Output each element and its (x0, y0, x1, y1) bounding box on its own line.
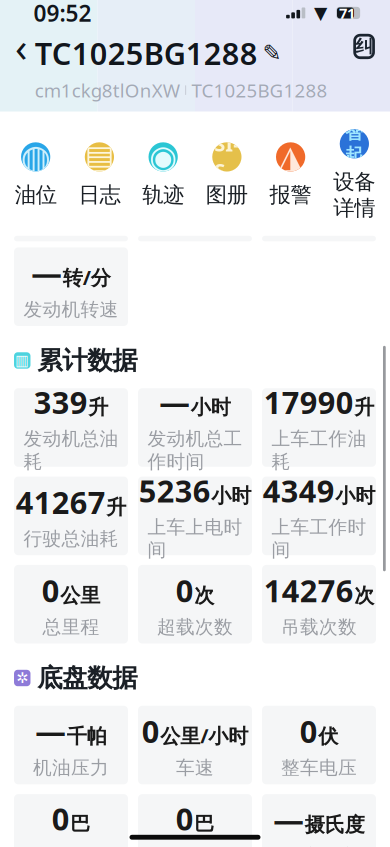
staticText: 41267 (16, 482, 106, 522)
staticText: ✲ (16, 670, 28, 686)
staticText: 行驶总油耗 (23, 527, 118, 550)
staticText: 机油压力 (33, 756, 109, 779)
staticText: 发动机转速 (23, 298, 118, 321)
staticText: 智起 (345, 121, 364, 167)
staticText: ⌄ (180, 90, 209, 129)
staticText: 0 (300, 711, 318, 751)
staticText: 纠 (356, 36, 373, 57)
button[interactable]: Expand details (177, 102, 213, 116)
staticText: 转/分 (63, 264, 111, 291)
button[interactable]: 智起 (325, 129, 383, 221)
staticText: 上车工作油耗 (271, 427, 366, 473)
staticText: 339 (34, 382, 88, 422)
button[interactable]: Report correction (352, 33, 376, 60)
button[interactable]: 0 (138, 794, 252, 847)
staticText: 0 (142, 711, 160, 751)
button[interactable]: 0 (14, 794, 128, 847)
staticText: — (159, 382, 190, 422)
button[interactable]: ▤ (70, 142, 128, 208)
staticText: 发动机总油耗 (23, 427, 118, 473)
button[interactable]: Back (7, 33, 35, 60)
staticText: 报警 (270, 182, 312, 208)
staticText: ◉ (149, 139, 177, 175)
staticText: 公里/小时 (160, 722, 248, 749)
staticText: 17990 (264, 382, 354, 422)
button[interactable]: 17990 (262, 388, 376, 467)
staticText: 油位 (15, 182, 57, 208)
staticText: ▼ (314, 3, 327, 23)
staticText: 巴 (70, 811, 90, 836)
button[interactable]: SIS (198, 142, 256, 208)
staticText: 14276 (264, 570, 354, 611)
button[interactable]: 0 (262, 706, 376, 784)
button[interactable]: — (14, 706, 128, 784)
button[interactable]: — (262, 794, 376, 847)
staticText: 小时 (211, 483, 251, 508)
staticText: 巴 (194, 811, 214, 836)
button[interactable]: 0 (138, 706, 252, 784)
button[interactable]: — (14, 247, 128, 326)
staticText: 累计数据 (37, 345, 137, 376)
staticText: 轨迹 (142, 182, 184, 208)
button[interactable]: 339 (14, 388, 128, 467)
staticText: 吊载次数 (281, 616, 357, 638)
button[interactable]: — (138, 388, 252, 467)
staticText: 4349 (263, 470, 335, 511)
staticText: ◍ (21, 137, 51, 176)
button[interactable]: ◍ (7, 142, 65, 208)
staticText: 71 (339, 3, 355, 23)
staticText: — (273, 799, 304, 840)
staticText: SIS (214, 130, 239, 183)
staticText: 伏 (318, 724, 338, 749)
staticText: 次 (194, 583, 214, 608)
button[interactable]: Rename (264, 45, 281, 62)
staticText: 小时 (191, 395, 231, 420)
button[interactable]: 41267 (14, 477, 128, 555)
staticText: ▥ (15, 352, 29, 369)
staticText: 摄氏度 (305, 812, 365, 837)
staticText: 整车电压 (281, 756, 357, 779)
button[interactable]: 4349 (262, 477, 376, 555)
staticText: TC1025BG1288 (35, 33, 258, 73)
staticText: 升 (88, 395, 108, 420)
staticText: 图册 (206, 182, 248, 208)
staticText: 千帕 (67, 724, 107, 749)
button[interactable]: 0 (138, 565, 252, 643)
staticText: 超载次数 (157, 616, 233, 638)
staticText: 上车工作时间 (271, 516, 366, 562)
button[interactable]: 5236 (138, 477, 252, 555)
staticText: ◮ (278, 139, 303, 175)
staticText: 升 (106, 495, 126, 519)
staticText: ‹ (15, 20, 27, 73)
staticText: 0 (176, 570, 194, 611)
staticText: ✎ (263, 40, 282, 66)
staticText: 0 (52, 798, 70, 839)
staticText: 公里 (60, 583, 100, 608)
staticText: 次 (354, 583, 374, 608)
staticText: 车速 (176, 756, 214, 779)
staticText: 小时 (335, 483, 375, 508)
button[interactable]: 0 (14, 565, 128, 643)
staticText: TC1025BG1288 (192, 78, 328, 102)
staticText: 升 (354, 395, 374, 420)
staticText: 发动机总工作时间 (147, 427, 242, 473)
staticText: 09:52 (33, 0, 91, 28)
staticText: 日志 (78, 182, 120, 208)
staticText: 设备详情 (333, 169, 375, 221)
staticText: ▤ (84, 139, 114, 175)
staticText: 总里程 (42, 616, 99, 638)
staticText: cm1ckg8tlOnXW (35, 78, 180, 102)
button[interactable]: 14276 (262, 565, 376, 643)
staticText: — (31, 252, 62, 293)
staticText: 0 (176, 798, 194, 839)
staticText: 0 (42, 570, 60, 611)
staticText: 上车上电时间 (147, 516, 242, 562)
staticText: — (35, 711, 66, 751)
staticText: 底盘数据 (37, 662, 137, 693)
staticText: 5236 (139, 470, 211, 511)
button[interactable]: ◮ (262, 142, 320, 208)
button[interactable]: ◉ (134, 142, 192, 208)
